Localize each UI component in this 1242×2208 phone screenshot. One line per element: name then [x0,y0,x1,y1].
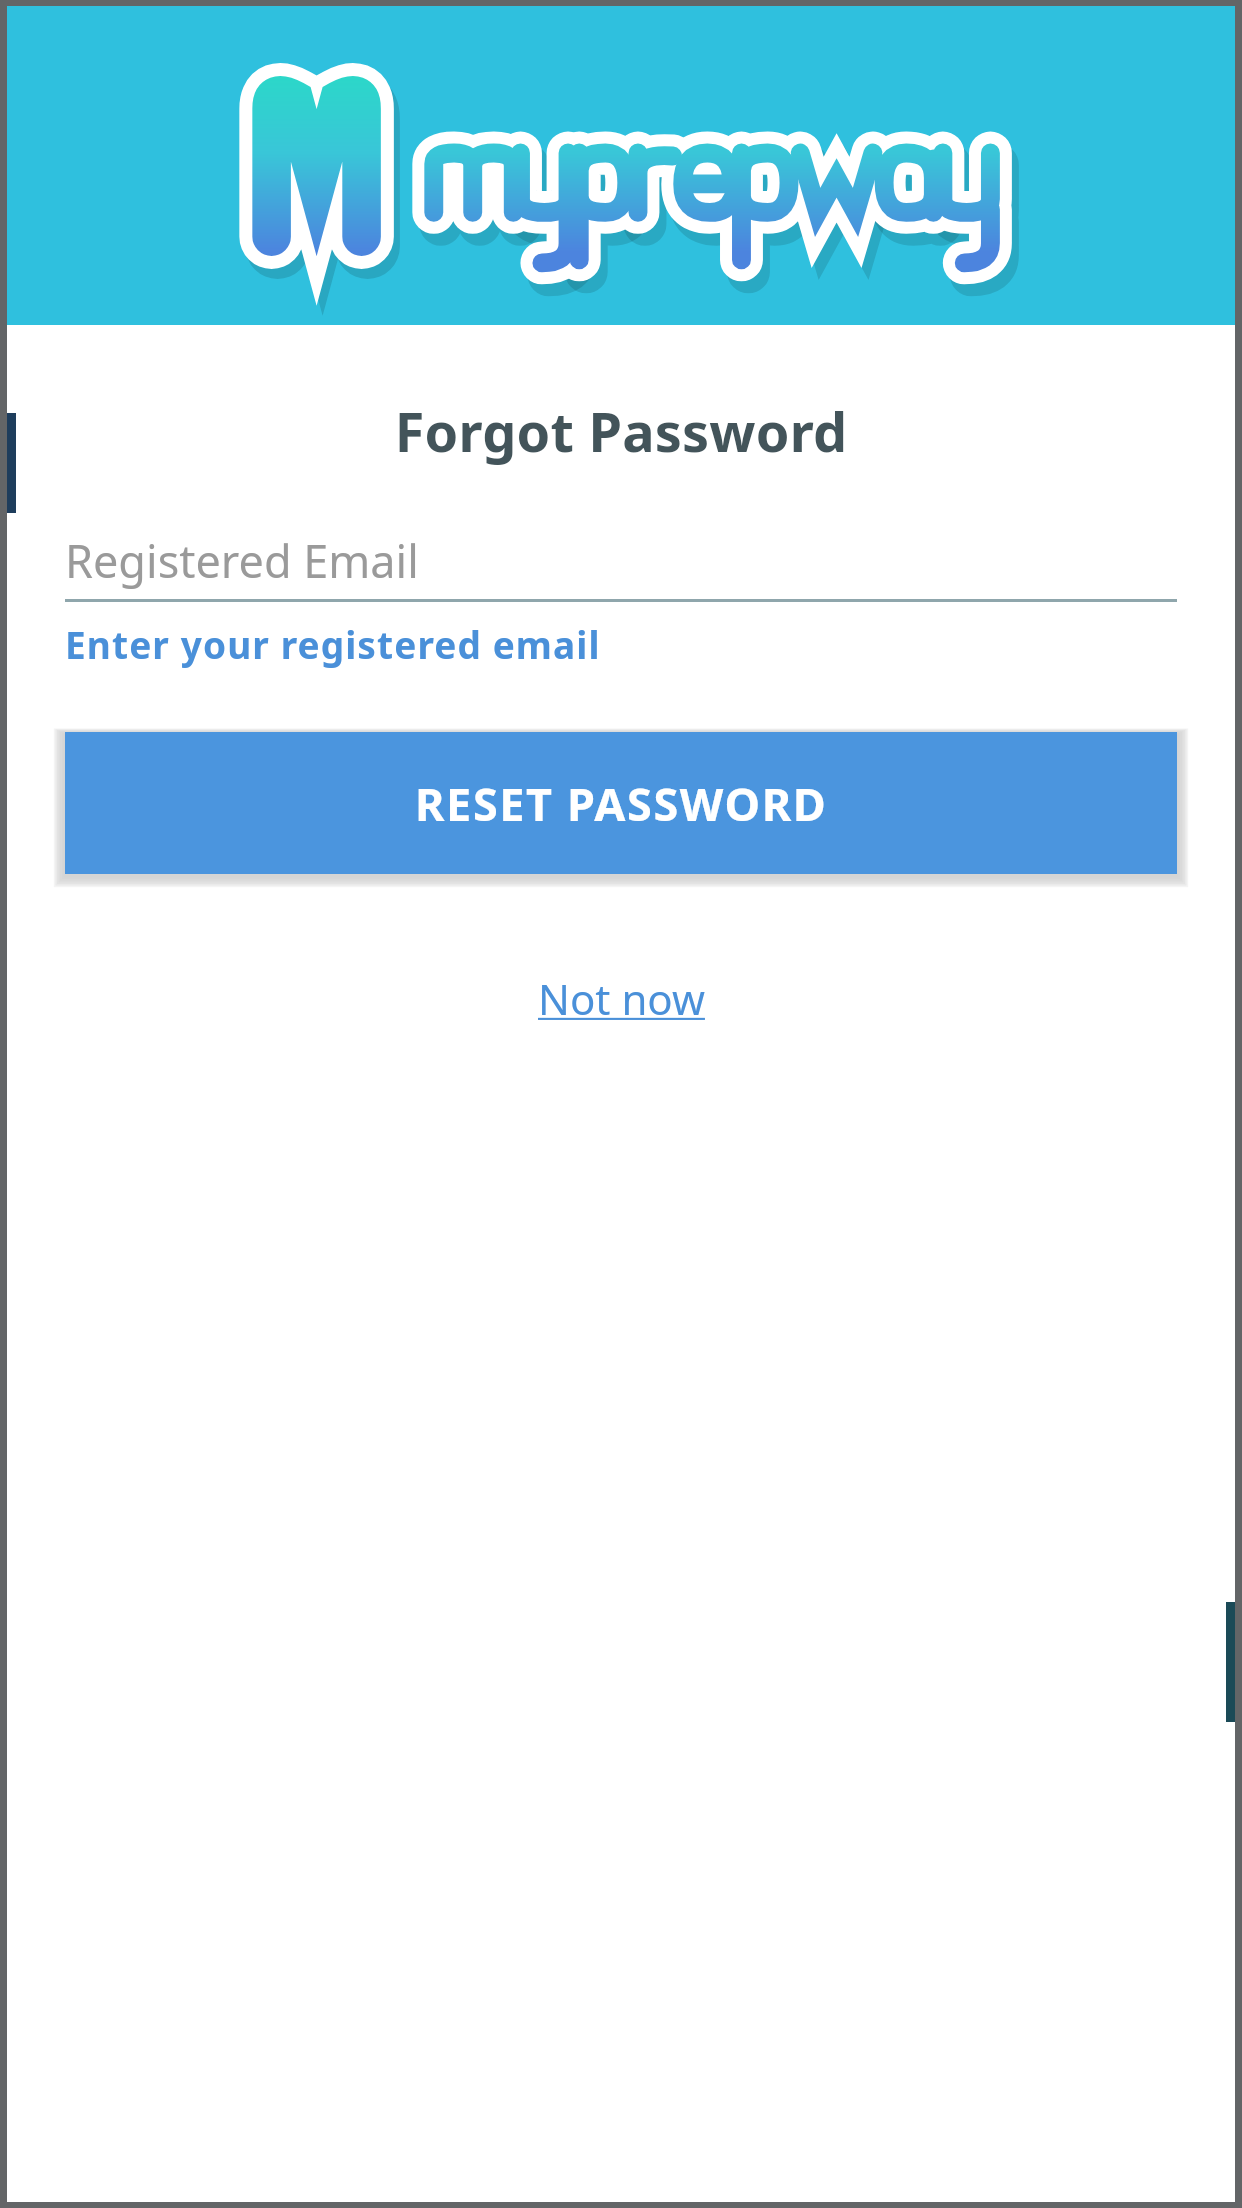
button[interactable]: Registered Email [65,522,1177,599]
staticText: Not now [538,970,705,1027]
staticText: RESET PASSWORD [415,773,828,834]
button[interactable]: Not now [518,964,725,1033]
staticText: Registered Email [65,530,419,591]
staticText: Enter your registered email [65,619,601,669]
button[interactable]: RESET PASSWORD [65,732,1177,874]
staticText: Forgot Password [7,394,1235,468]
